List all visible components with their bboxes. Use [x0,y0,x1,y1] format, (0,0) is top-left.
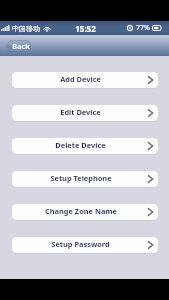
button[interactable]: Edit Device [12,105,158,121]
staticText: Edit Device [60,107,101,117]
button[interactable]: Add Device [12,72,158,88]
button[interactable]: Change Zone Name [12,204,158,220]
staticText: 77% [136,23,150,33]
button[interactable]: Setup Password [12,237,158,253]
staticText: Add Device [60,74,101,84]
button[interactable]: Back [5,40,31,52]
staticText: Delete Device [55,140,106,150]
button[interactable]: Setup Telephone [12,171,158,187]
staticText: Change Zone Name [45,206,117,216]
staticText: 中国移动 [12,24,40,33]
staticText: Setup Telephone [50,173,112,183]
staticText: Back [12,41,30,51]
button[interactable]: Delete Device [12,138,158,154]
staticText: 15:52 [75,23,96,34]
staticText: Setup Password [51,239,110,249]
